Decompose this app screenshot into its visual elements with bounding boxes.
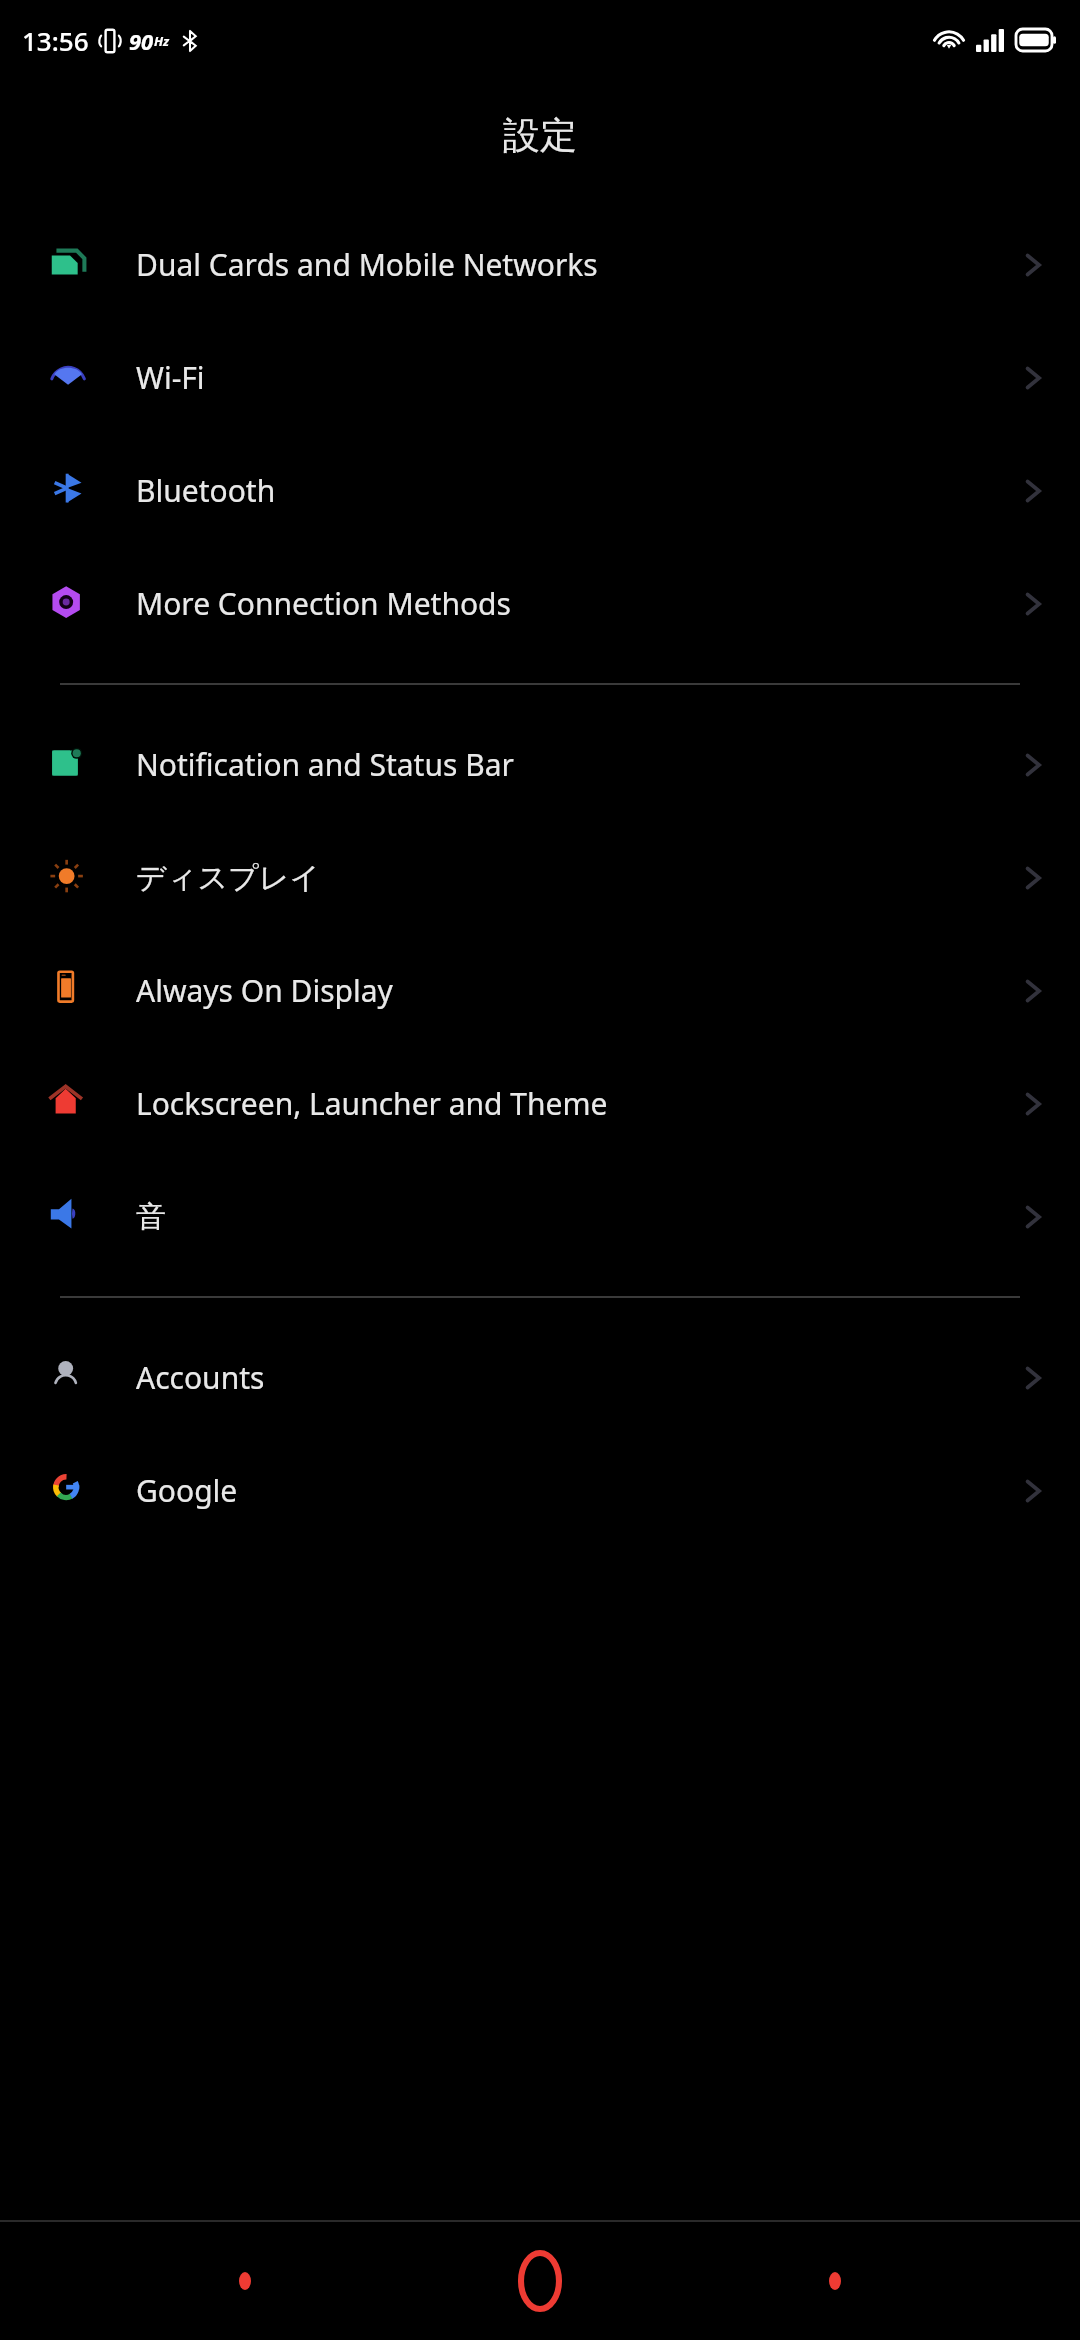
staticText: Hz (154, 32, 170, 50)
staticText: Notification and Status Bar (136, 744, 1016, 785)
staticText: 設定 (503, 112, 577, 159)
staticText: Bluetooth (136, 470, 1016, 511)
staticText: Dual Cards and Mobile Networks (136, 244, 1016, 285)
staticText: Lockscreen, Launcher and Theme (136, 1083, 1016, 1124)
staticText: 13:56 (22, 23, 89, 58)
button[interactable]: Bluetooth (0, 434, 1080, 547)
button[interactable]: Dual Cards and Mobile Networks (0, 208, 1080, 321)
button[interactable]: Accounts (0, 1321, 1080, 1434)
staticText: Google (136, 1470, 1016, 1511)
staticText: Wi-Fi (136, 357, 1016, 398)
staticText: ディスプレイ (136, 859, 1016, 897)
staticText: 音 (136, 1198, 1016, 1236)
button[interactable]: Always On Display (0, 934, 1080, 1047)
button[interactable]: ディスプレイ (0, 821, 1080, 934)
button[interactable]: Google (0, 1434, 1080, 1547)
button[interactable]: Lockscreen, Launcher and Theme (0, 1047, 1080, 1160)
staticText: More Connection Methods (136, 583, 1016, 624)
button[interactable]: 音 (0, 1160, 1080, 1273)
staticText: Accounts (136, 1357, 1016, 1398)
button[interactable]: Back (790, 2236, 880, 2326)
button[interactable]: Wi-Fi (0, 321, 1080, 434)
button[interactable]: Notification and Status Bar (0, 708, 1080, 821)
staticText: 90 (129, 26, 154, 56)
button[interactable]: Home (490, 2231, 590, 2331)
button[interactable]: Recents (200, 2236, 290, 2326)
staticText: Always On Display (136, 970, 1016, 1011)
button[interactable]: More Connection Methods (0, 547, 1080, 660)
